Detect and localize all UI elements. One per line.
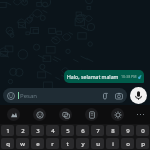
other: Camera — [115, 92, 123, 100]
button[interactable]: 0 — [136, 125, 149, 136]
button[interactable]: 1 — [1, 125, 14, 136]
button[interactable]: Halo, selamat malam — [64, 70, 144, 83]
staticText: 1 — [6, 127, 10, 135]
button[interactable]: i — [106, 138, 119, 149]
staticText: 4 — [51, 127, 55, 135]
staticText: q — [6, 140, 10, 148]
staticText: 7 — [96, 127, 100, 135]
staticText: 0 — [141, 127, 145, 135]
staticText: 5 — [66, 127, 70, 135]
button[interactable]: e — [31, 138, 44, 149]
button[interactable]: o — [121, 138, 134, 149]
button[interactable]: 6 — [76, 125, 89, 136]
button[interactable]: r — [46, 138, 59, 149]
button[interactable]: w — [16, 138, 29, 149]
staticText: y — [81, 140, 85, 148]
button[interactable]: More options — [130, 105, 150, 124]
staticText: r — [51, 140, 54, 148]
staticText: 9 — [126, 127, 130, 135]
staticText: Halo, selamat malam — [67, 73, 119, 80]
button[interactable]: q — [1, 138, 14, 149]
button[interactable]: GIF — [26, 105, 52, 124]
button[interactable]: Theme — [104, 105, 130, 124]
staticText: t — [66, 140, 69, 148]
other: Emoji — [7, 92, 15, 100]
staticText: 10:38 PM — [121, 74, 137, 79]
staticText: w — [20, 140, 25, 148]
button[interactable]: Voice message — [130, 87, 147, 104]
button[interactable]: Sticker — [0, 105, 26, 124]
staticText: i — [112, 140, 114, 148]
button[interactable]: y — [76, 138, 89, 149]
button[interactable]: p — [136, 138, 149, 149]
staticText: 3 — [36, 127, 40, 135]
staticText: 6 — [81, 127, 85, 135]
button[interactable]: 9 — [121, 125, 134, 136]
button[interactable]: Document — [78, 105, 104, 124]
button[interactable]: 5 — [61, 125, 74, 136]
button[interactable]: u — [91, 138, 104, 149]
staticText: o — [126, 140, 130, 148]
button[interactable]: 4 — [46, 125, 59, 136]
staticText: 2 — [21, 127, 25, 135]
button[interactable]: 8 — [106, 125, 119, 136]
staticText: p — [141, 140, 145, 148]
button[interactable]: 7 — [91, 125, 104, 136]
button[interactable]: 3 — [31, 125, 44, 136]
staticText: u — [96, 140, 100, 148]
button[interactable]: Emoji — [3, 88, 127, 103]
staticText: e — [36, 140, 40, 148]
other: Attach — [102, 92, 110, 100]
button[interactable]: 2 — [16, 125, 29, 136]
button[interactable]: t — [61, 138, 74, 149]
staticText: Pesan — [20, 92, 37, 100]
button[interactable]: Image — [52, 105, 78, 124]
staticText: 8 — [111, 127, 115, 135]
